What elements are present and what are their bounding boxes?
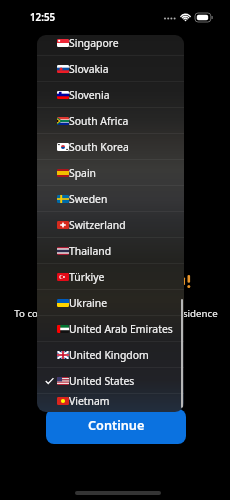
staticText: Spain <box>69 166 97 180</box>
staticText: Türkiye <box>69 270 105 284</box>
staticText: Singapore <box>69 36 119 50</box>
staticText: Vietnam <box>69 394 110 407</box>
staticText: United Arab Emirates <box>69 322 173 336</box>
button[interactable]: Türkiye <box>37 264 184 289</box>
staticText: 12:55 <box>30 11 56 24</box>
button[interactable]: Ukraine <box>37 290 184 315</box>
button[interactable]: Slovenia <box>37 82 184 107</box>
staticText: Slovakia <box>69 62 109 76</box>
staticText: To continue, select your country of resi… <box>1 307 230 320</box>
button[interactable]: Sweden <box>37 186 184 211</box>
staticText: South Africa <box>69 114 129 128</box>
staticText: Thailand <box>69 244 112 258</box>
staticText: South Korea <box>69 140 129 154</box>
button[interactable]: Vietnam <box>37 394 184 407</box>
button[interactable]: United Kingdom <box>37 342 184 367</box>
button[interactable]: Thailand <box>37 238 184 263</box>
button[interactable]: Spain <box>37 160 184 185</box>
button[interactable]: Singapore <box>37 35 184 55</box>
staticText: Slovenia <box>69 88 110 102</box>
button[interactable]: United Arab Emirates <box>37 316 184 341</box>
button[interactable]: Switzerland <box>37 212 184 237</box>
staticText: Continue <box>88 416 145 433</box>
button[interactable]: Continue <box>46 409 186 444</box>
button[interactable]: Slovakia <box>37 56 184 81</box>
staticText: Sweden <box>69 192 108 206</box>
button[interactable]: South Africa <box>37 108 184 133</box>
button[interactable]: United States <box>37 368 184 393</box>
staticText: Ukraine <box>69 296 108 310</box>
staticText: Switzerland <box>69 218 126 232</box>
button[interactable]: South Korea <box>37 134 184 159</box>
staticText: United States <box>69 374 135 388</box>
staticText: United Kingdom <box>69 348 149 362</box>
